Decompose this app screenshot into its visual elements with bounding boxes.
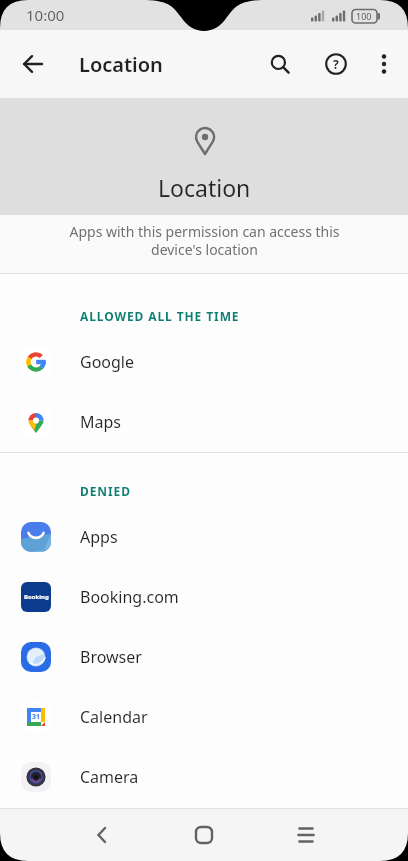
button[interactable]: [153, 808, 255, 861]
staticText: Location: [79, 51, 163, 78]
staticText: DENIED: [80, 483, 131, 499]
staticText: 10:00: [26, 5, 65, 25]
staticText: ALLOWED ALL THE TIME: [80, 308, 240, 324]
button[interactable]: [9, 40, 57, 88]
staticText: Browser: [80, 646, 142, 668]
button[interactable]: Maps: [0, 392, 408, 452]
staticText: Camera: [80, 766, 139, 788]
button[interactable]: Camera: [0, 747, 408, 807]
staticText: Booking.com: [80, 586, 179, 608]
staticText: Google: [80, 351, 135, 373]
staticText: 100: [356, 10, 372, 22]
button[interactable]: [255, 808, 357, 861]
button[interactable]: [248, 36, 312, 92]
staticText: Location: [158, 172, 251, 203]
staticText: 31: [32, 712, 41, 722]
button[interactable]: Google: [0, 332, 408, 392]
button[interactable]: Booking: [0, 567, 408, 627]
staticText: Apps with this permission can access thi…: [69, 222, 340, 259]
staticText: Apps: [80, 526, 118, 548]
staticText: Calendar: [80, 706, 148, 728]
staticText: ?: [333, 56, 339, 72]
staticText: Maps: [80, 411, 121, 433]
button[interactable]: ?: [312, 36, 360, 92]
button[interactable]: [51, 808, 153, 861]
staticText: Booking: [24, 593, 49, 601]
button[interactable]: Apps: [0, 507, 408, 567]
button[interactable]: [360, 36, 408, 92]
button[interactable]: 31: [0, 687, 408, 747]
button[interactable]: Browser: [0, 627, 408, 687]
